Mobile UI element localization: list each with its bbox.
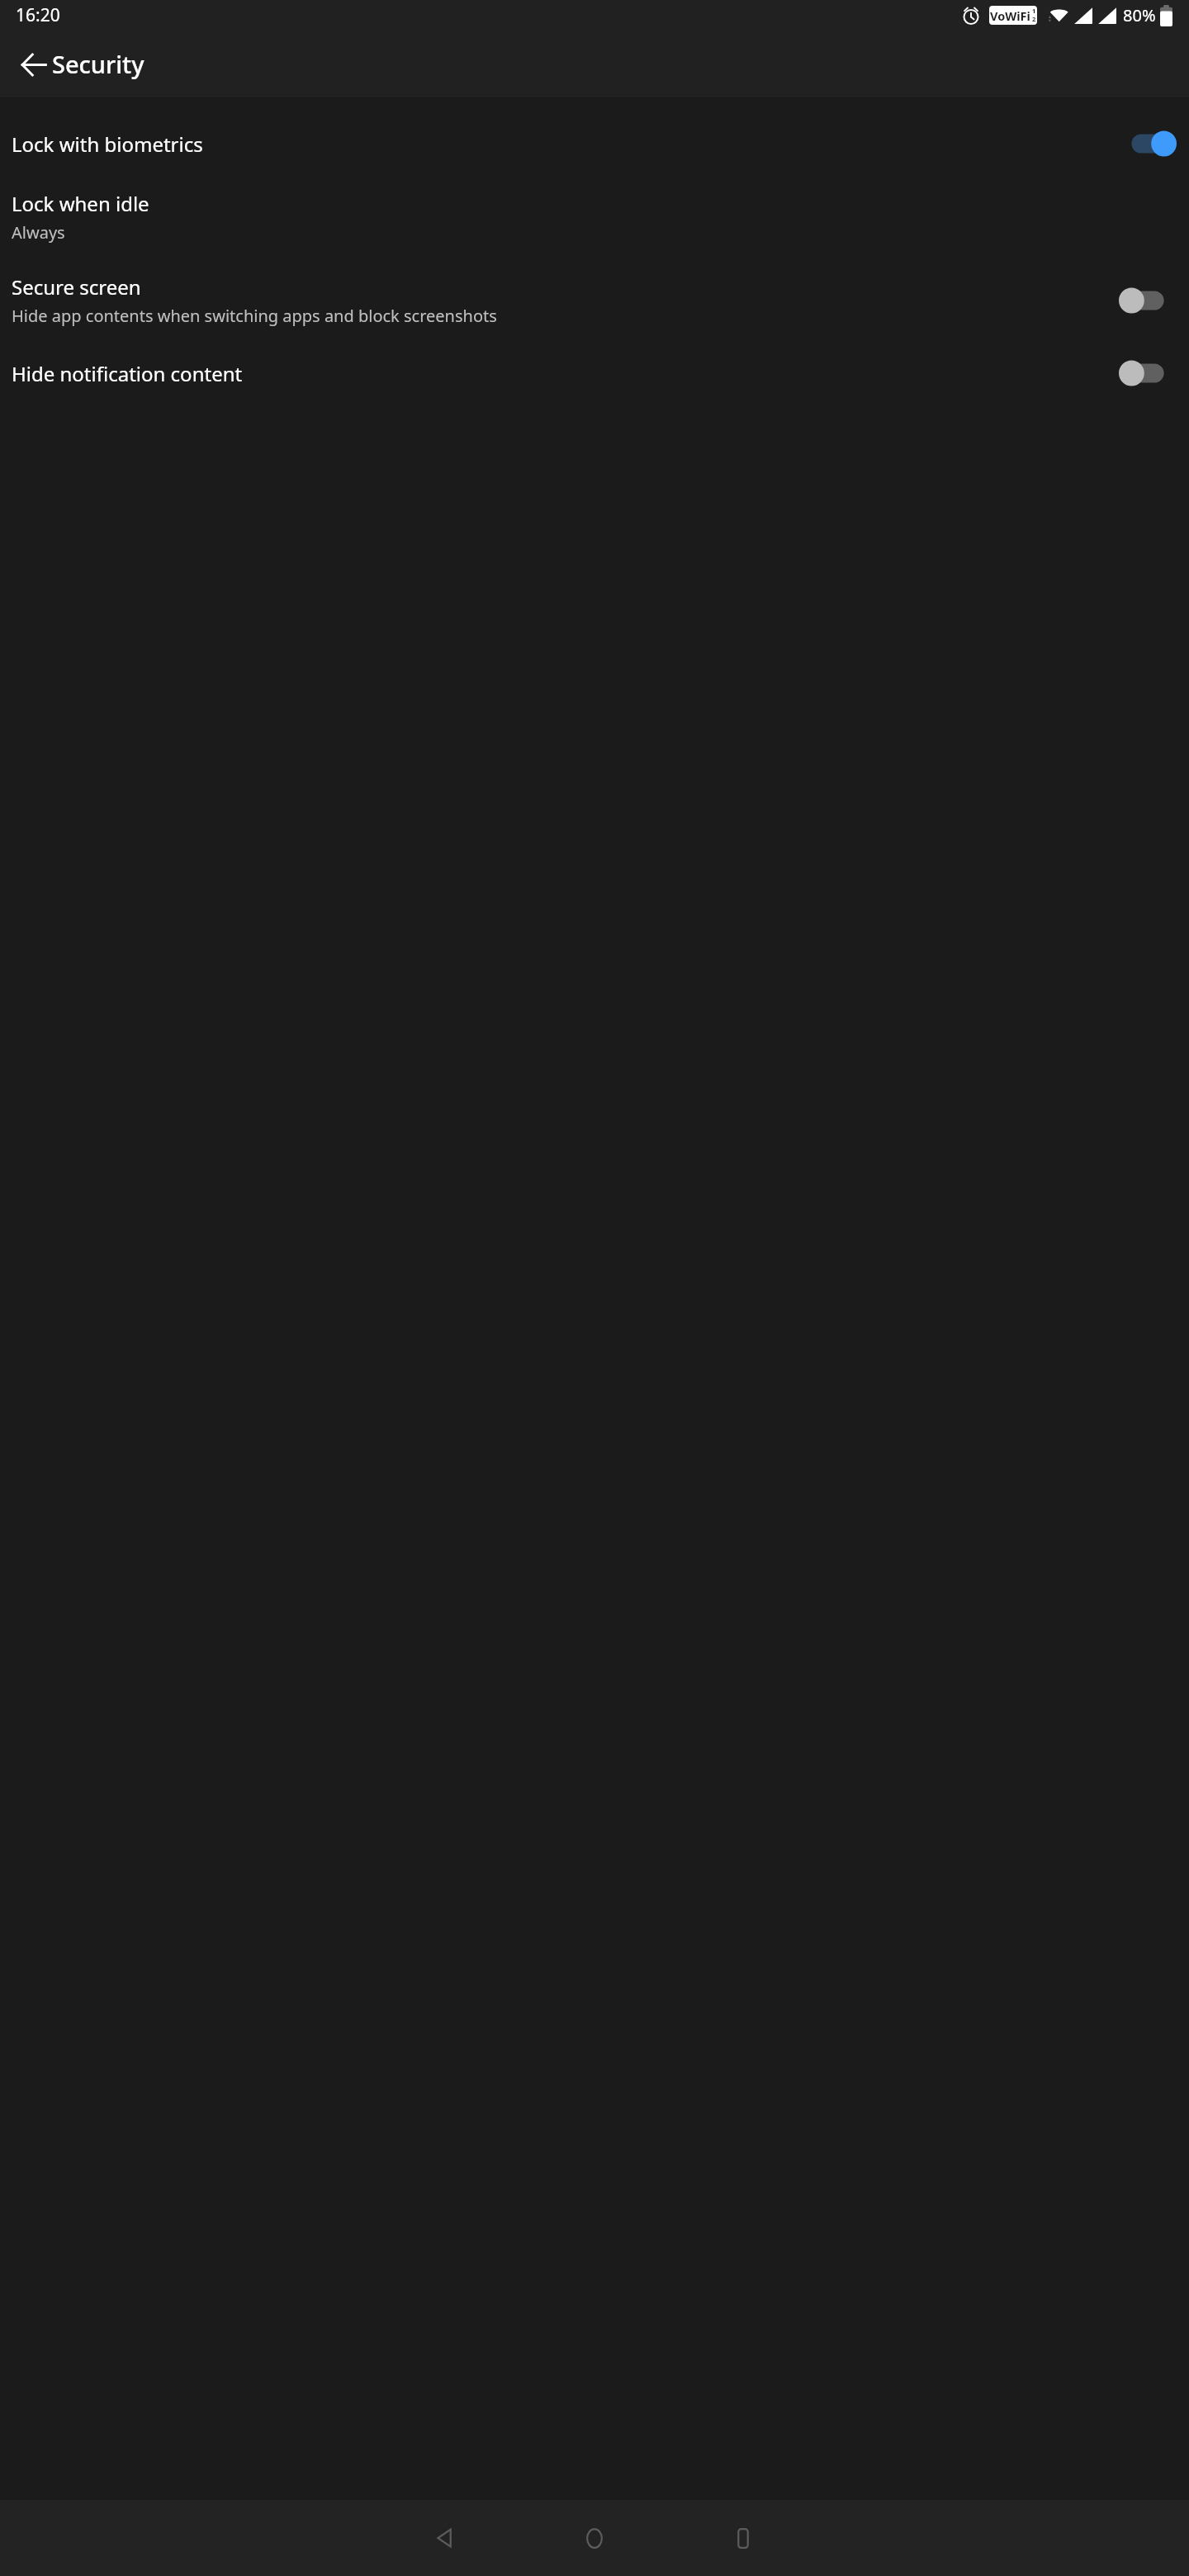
staticText: 1 xyxy=(1032,7,1036,15)
staticText: VoWiFi xyxy=(990,7,1030,24)
button[interactable]: Recent apps xyxy=(669,2500,817,2576)
button[interactable]: Secure screen xyxy=(0,258,1189,342)
staticText: 16:20 xyxy=(16,3,60,27)
staticText: Lock when idle xyxy=(12,190,149,217)
button[interactable]: Lock with biometrics xyxy=(0,112,1189,175)
button[interactable]: Toggle off xyxy=(1125,357,1171,390)
button[interactable]: Back xyxy=(372,2500,520,2576)
button[interactable]: Toggle on xyxy=(1125,127,1171,160)
button[interactable]: Hide notification content xyxy=(0,342,1189,405)
staticText: Lock with biometrics xyxy=(12,130,203,158)
staticText: Always xyxy=(12,221,65,244)
staticText: 2 xyxy=(1032,15,1036,23)
staticText: Secure screen xyxy=(12,273,141,301)
staticText: Security xyxy=(52,48,144,80)
staticText: 80% xyxy=(1123,4,1156,26)
button[interactable]: Lock when idle xyxy=(0,175,1189,258)
button[interactable]: Back xyxy=(8,40,58,89)
button[interactable]: Toggle off xyxy=(1125,284,1171,317)
button[interactable]: Home xyxy=(520,2500,669,2576)
staticText: Hide notification content xyxy=(12,360,243,387)
staticText: Hide app contents when switching apps an… xyxy=(12,305,497,327)
